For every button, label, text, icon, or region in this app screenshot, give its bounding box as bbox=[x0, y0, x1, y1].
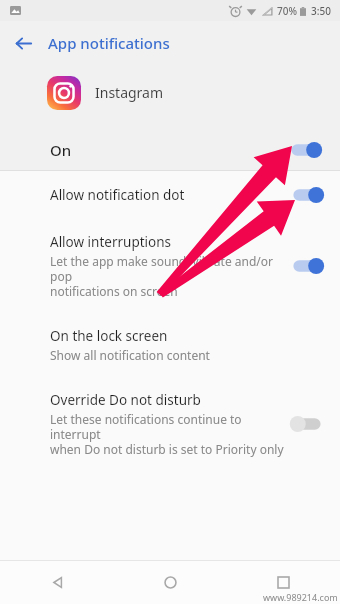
staticText: www.989214.com bbox=[263, 591, 338, 603]
button[interactable]: Toggle on bbox=[292, 256, 326, 276]
button[interactable]: Recent apps bbox=[227, 561, 340, 604]
button[interactable]: Override Do not disturb bbox=[0, 377, 340, 471]
staticText: Show all notification content bbox=[50, 347, 210, 363]
button[interactable]: Allow notification dot bbox=[0, 171, 340, 219]
button[interactable]: Back bbox=[6, 26, 40, 60]
button[interactable]: Toggle off bbox=[292, 414, 326, 434]
button[interactable]: Back bbox=[0, 561, 114, 604]
staticText: App notifications bbox=[48, 33, 170, 53]
staticText: On the lock screen bbox=[50, 327, 168, 345]
staticText: Let the app make sound, vibrate and/or p… bbox=[50, 253, 284, 299]
staticText: 70% bbox=[277, 4, 297, 18]
button[interactable]: Allow interruptions bbox=[0, 219, 340, 313]
button[interactable]: On the lock screen bbox=[0, 313, 340, 377]
staticText: Allow interruptions bbox=[50, 233, 172, 251]
staticText: Override Do not disturb bbox=[50, 391, 201, 409]
staticText: Allow notification dot bbox=[50, 186, 185, 204]
staticText: Instagram bbox=[95, 83, 164, 102]
staticText: Let these notifications continue to inte… bbox=[50, 411, 284, 457]
button[interactable]: Home bbox=[114, 561, 227, 604]
button[interactable]: On bbox=[0, 129, 340, 170]
button[interactable]: Toggle on bbox=[292, 185, 326, 205]
staticText: 3:50 bbox=[311, 4, 331, 18]
staticText: On bbox=[50, 140, 72, 160]
button[interactable]: Toggle on bbox=[290, 140, 324, 160]
